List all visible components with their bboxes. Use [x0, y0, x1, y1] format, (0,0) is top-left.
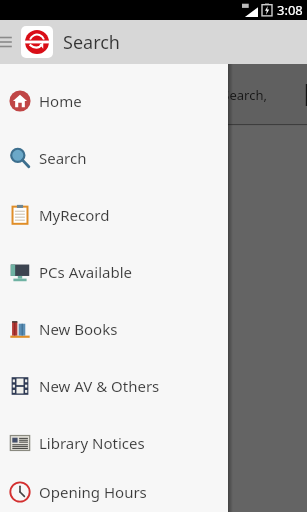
button[interactable]: App logo	[21, 26, 53, 58]
button[interactable]: New Books	[0, 300, 228, 357]
button[interactable]: Open navigation drawer	[0, 32, 14, 52]
staticText: Search	[39, 148, 87, 168]
staticText: PCs Available	[39, 262, 132, 282]
staticText: New AV & Others	[39, 376, 160, 396]
staticText: 3:08	[277, 1, 303, 19]
staticText: Home	[39, 91, 82, 111]
button[interactable]: PCs Available	[0, 243, 228, 300]
button[interactable]: Search	[0, 129, 228, 186]
button[interactable]: Library Notices	[0, 414, 228, 471]
staticText: New Books	[39, 319, 118, 339]
button[interactable]: Opening Hours	[0, 471, 228, 512]
staticText: Academic Search, Business Source, ERIC, …	[160, 86, 307, 104]
button[interactable]: Home	[0, 72, 228, 129]
staticText: Library Notices	[39, 433, 145, 453]
staticText: MyRecord	[39, 205, 110, 225]
button[interactable]: MyRecord	[0, 186, 228, 243]
staticText: Search	[63, 30, 120, 55]
staticText: Opening Hours	[39, 482, 147, 502]
button[interactable]: New AV & Others	[0, 357, 228, 414]
